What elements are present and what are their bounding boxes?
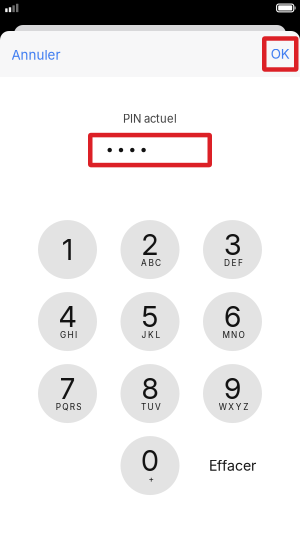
staticText: 9: [224, 371, 241, 406]
button[interactable]: 2: [120, 220, 179, 279]
staticText: 6: [224, 299, 241, 334]
button[interactable]: 7: [38, 364, 97, 423]
staticText: 7: [59, 371, 75, 406]
staticText: 4: [58, 299, 76, 334]
staticText: Annuler: [11, 47, 60, 63]
staticText: Effacer: [209, 457, 256, 474]
staticText: PIN actuel: [123, 112, 177, 126]
button[interactable]: 8: [120, 364, 179, 423]
staticText: PQRS: [56, 402, 81, 412]
staticText: 8: [141, 371, 158, 406]
button[interactable]: 9: [203, 364, 262, 423]
staticText: 1: [62, 232, 73, 267]
staticText: 0: [141, 443, 159, 478]
staticText: 2: [141, 227, 158, 262]
button[interactable]: Effacer: [203, 436, 262, 495]
button[interactable]: 3: [203, 220, 262, 279]
staticText: +: [148, 474, 153, 484]
staticText: JKL: [141, 330, 161, 340]
staticText: 3: [224, 227, 241, 262]
staticText: 5: [141, 299, 158, 334]
staticText: WXYZ: [219, 402, 248, 412]
staticText: DEF: [224, 258, 243, 268]
button[interactable]: 4: [38, 292, 97, 351]
button[interactable]: 1: [38, 220, 97, 279]
staticText: MNO: [222, 330, 245, 340]
button[interactable]: 6: [203, 292, 262, 351]
button[interactable]: Annuler: [9, 40, 66, 68]
button[interactable]: 5: [120, 292, 179, 351]
button[interactable]: 0: [120, 436, 179, 495]
staticText: ABC: [141, 258, 161, 268]
staticText: GHI: [60, 330, 77, 340]
button[interactable]: OK: [264, 39, 296, 69]
staticText: TUV: [141, 402, 161, 412]
staticText: OK: [271, 46, 290, 62]
